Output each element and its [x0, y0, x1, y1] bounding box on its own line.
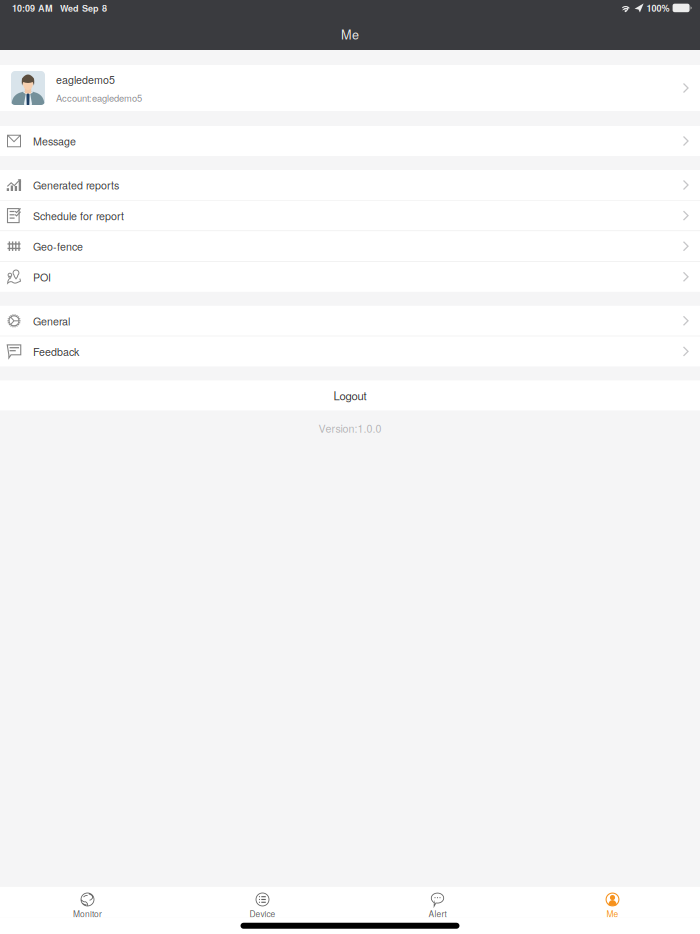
- button[interactable]: Monitor: [0, 886, 175, 917]
- staticText: Alert: [428, 907, 446, 919]
- staticText: Version:1.0.0: [318, 420, 381, 436]
- button[interactable]: Schedule for report: [0, 201, 700, 231]
- staticText: Account:eagledemo5: [56, 91, 142, 104]
- staticText: Generated reports: [33, 177, 119, 193]
- staticText: eagledemo5: [56, 72, 115, 87]
- staticText: Message: [33, 133, 76, 149]
- staticText: Monitor: [73, 907, 102, 919]
- button[interactable]: Geo-fence: [0, 231, 700, 261]
- button[interactable]: POI: [0, 262, 700, 292]
- button[interactable]: Generated reports: [0, 170, 700, 200]
- button[interactable]: Device: [175, 886, 350, 917]
- button[interactable]: Feedback: [0, 336, 700, 366]
- button[interactable]: Me: [525, 886, 700, 917]
- staticText: Device: [249, 907, 275, 919]
- staticText: Feedback: [33, 344, 79, 359]
- staticText: Me: [606, 907, 618, 919]
- staticText: Me: [341, 25, 359, 43]
- button[interactable]: Alert: [350, 886, 525, 917]
- staticText: Logout: [333, 387, 366, 403]
- staticText: Geo-fence: [33, 239, 83, 254]
- staticText: General: [33, 313, 70, 328]
- button[interactable]: Logout: [0, 380, 700, 410]
- staticText: Schedule for report: [33, 208, 124, 223]
- staticText: POI: [33, 269, 51, 284]
- staticText: 100%: [647, 1, 670, 14]
- staticText: 10:09 AM: [12, 1, 53, 14]
- button[interactable]: Message: [0, 126, 700, 156]
- staticText: Wed Sep 8: [60, 1, 107, 14]
- button[interactable]: eagledemo5: [0, 65, 700, 111]
- button[interactable]: General: [0, 306, 700, 336]
